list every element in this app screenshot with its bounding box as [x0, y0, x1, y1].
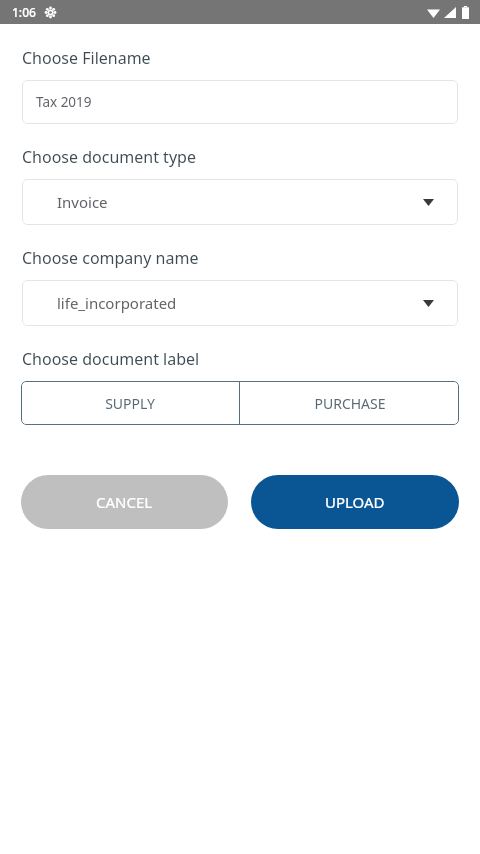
button[interactable]: Invoice [22, 179, 458, 225]
staticText: life_incorporated [57, 293, 177, 313]
staticText: Choose document label [22, 348, 200, 370]
staticText: Choose document type [22, 146, 196, 168]
button[interactable]: CANCEL [21, 475, 228, 529]
staticText: UPLOAD [325, 492, 385, 512]
staticText: Choose company name [22, 247, 199, 269]
staticText: CANCEL [96, 492, 153, 512]
staticText: PURCHASE [314, 394, 386, 413]
button[interactable]: Tax 2019 [22, 80, 458, 124]
button[interactable]: PURCHASE [240, 381, 459, 425]
staticText: 1:06 [12, 4, 36, 20]
button[interactable]: life_incorporated [22, 280, 458, 326]
button[interactable]: UPLOAD [251, 475, 459, 529]
staticText: Choose Filename [22, 47, 151, 69]
staticText: Tax 2019 [36, 93, 92, 111]
staticText: SUPPLY [105, 394, 155, 413]
button[interactable]: SUPPLY [21, 381, 239, 425]
staticText: Invoice [57, 192, 108, 212]
